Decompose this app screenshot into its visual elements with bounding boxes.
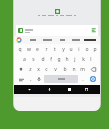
button[interactable]: Back xyxy=(22,85,36,94)
button[interactable]: y xyxy=(59,45,67,54)
button[interactable]: . xyxy=(79,74,87,84)
staticText: , xyxy=(30,76,32,83)
staticText: z xyxy=(29,66,32,73)
button[interactable]: Keyboard switch xyxy=(79,85,93,94)
button[interactable]: i xyxy=(75,45,83,54)
staticText: r xyxy=(45,46,48,53)
staticText: k xyxy=(82,56,85,63)
button[interactable] xyxy=(83,39,97,41)
button[interactable]: Space xyxy=(44,75,78,83)
button[interactable]: x xyxy=(34,64,42,74)
button[interactable]: r xyxy=(42,45,51,54)
button[interactable]: , xyxy=(27,74,35,84)
button[interactable]: e xyxy=(33,45,42,54)
button[interactable]: v xyxy=(51,64,60,74)
button[interactable]: u xyxy=(67,45,75,54)
button[interactable] xyxy=(40,39,55,41)
staticText: g xyxy=(57,56,61,63)
button[interactable]: Backspace xyxy=(87,64,99,74)
button[interactable]: s xyxy=(29,54,38,64)
staticText: u xyxy=(69,46,73,53)
button[interactable]: w xyxy=(24,45,33,54)
staticText: f xyxy=(50,56,52,63)
staticText: l xyxy=(90,56,92,63)
staticText: b xyxy=(63,66,67,73)
button[interactable]: Home xyxy=(42,85,56,94)
staticText: w xyxy=(27,46,31,53)
staticText: x xyxy=(37,66,40,73)
button[interactable]: k xyxy=(79,54,87,64)
button[interactable]: o xyxy=(83,45,91,54)
staticText: y xyxy=(62,46,65,53)
staticText: i xyxy=(78,46,80,53)
staticText: a xyxy=(23,56,26,63)
staticText: q xyxy=(18,46,22,53)
button[interactable]: Shift xyxy=(15,64,26,74)
staticText: . xyxy=(82,76,84,83)
staticText: c xyxy=(45,66,48,73)
button[interactable]: h xyxy=(63,54,71,64)
button[interactable]: g xyxy=(55,54,63,64)
button[interactable]: q xyxy=(15,45,24,54)
button[interactable]: d xyxy=(38,54,47,64)
button[interactable] xyxy=(69,39,83,41)
staticText: n xyxy=(72,66,76,73)
button[interactable] xyxy=(55,39,69,41)
button[interactable]: Search xyxy=(88,75,98,83)
other: Translate xyxy=(18,28,23,33)
button[interactable]: p xyxy=(91,45,99,54)
staticText: t xyxy=(54,46,56,53)
staticText: h xyxy=(65,56,69,63)
button[interactable] xyxy=(25,39,40,41)
staticText: p xyxy=(93,46,97,53)
staticText: m xyxy=(80,66,85,73)
button[interactable]: z xyxy=(26,64,34,74)
staticText: d xyxy=(41,56,45,63)
other: Options xyxy=(91,28,96,33)
button[interactable]: l xyxy=(87,54,95,64)
other: Google search xyxy=(17,38,21,42)
button[interactable]: j xyxy=(71,54,79,64)
button[interactable]: t xyxy=(51,45,59,54)
button[interactable]: m xyxy=(78,64,87,74)
button[interactable]: f xyxy=(47,54,55,64)
staticText: j xyxy=(74,56,76,63)
button[interactable]: Voice input xyxy=(35,74,43,84)
button[interactable]: Recents xyxy=(62,85,76,94)
staticText: e xyxy=(36,46,39,53)
button[interactable]: Translate xyxy=(16,25,98,36)
staticText: v xyxy=(54,66,57,73)
button[interactable]: b xyxy=(60,64,69,74)
button[interactable]: a xyxy=(20,54,29,64)
staticText: o xyxy=(85,46,89,53)
button[interactable]: Symbols xyxy=(15,74,27,84)
button[interactable]: n xyxy=(69,64,78,74)
staticText: s xyxy=(32,56,35,63)
button[interactable]: c xyxy=(42,64,51,74)
